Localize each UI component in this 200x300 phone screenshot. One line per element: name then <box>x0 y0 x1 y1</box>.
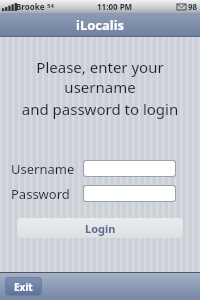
button[interactable]: Exit <box>6 278 41 295</box>
staticText: Login <box>85 221 116 236</box>
staticText: Password <box>11 185 83 203</box>
staticText: and password to login <box>0 99 200 119</box>
staticText: iLocalis <box>76 16 125 34</box>
staticText: 54 <box>47 2 54 10</box>
staticText: 11:00 PM <box>97 1 133 12</box>
button[interactable] <box>84 161 175 176</box>
button[interactable] <box>84 186 175 201</box>
staticText: 98 <box>188 1 198 12</box>
staticText: Username <box>11 160 83 178</box>
staticText: Brooke <box>16 1 45 12</box>
button[interactable]: Login <box>17 218 183 238</box>
staticText: Please, enter your username <box>0 57 200 97</box>
staticText: Exit <box>14 280 33 294</box>
